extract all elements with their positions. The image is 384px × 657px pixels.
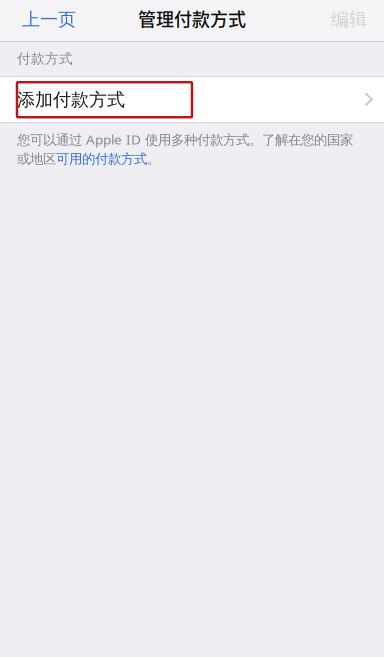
button[interactable]: 编辑 bbox=[317, 0, 384, 41]
staticText: 可用的付款方式 bbox=[56, 151, 147, 168]
staticText: 管理付款方式 bbox=[138, 5, 246, 32]
staticText: 添加付款方式 bbox=[17, 88, 125, 111]
button[interactable]: 添加付款方式 bbox=[0, 77, 384, 122]
staticText: 您可以通过 Apple ID 使用多种付款方式。了解在您的国家 bbox=[17, 130, 353, 148]
staticText: 上一页 bbox=[22, 8, 76, 31]
staticText: 或地区 bbox=[17, 151, 56, 168]
staticText: 。 bbox=[147, 151, 160, 168]
staticText: 编辑 bbox=[331, 8, 367, 31]
staticText: 付款方式 bbox=[17, 50, 73, 67]
button[interactable]: 上一页 bbox=[0, 0, 90, 41]
button[interactable]: 可用的付款方式 bbox=[56, 151, 147, 168]
